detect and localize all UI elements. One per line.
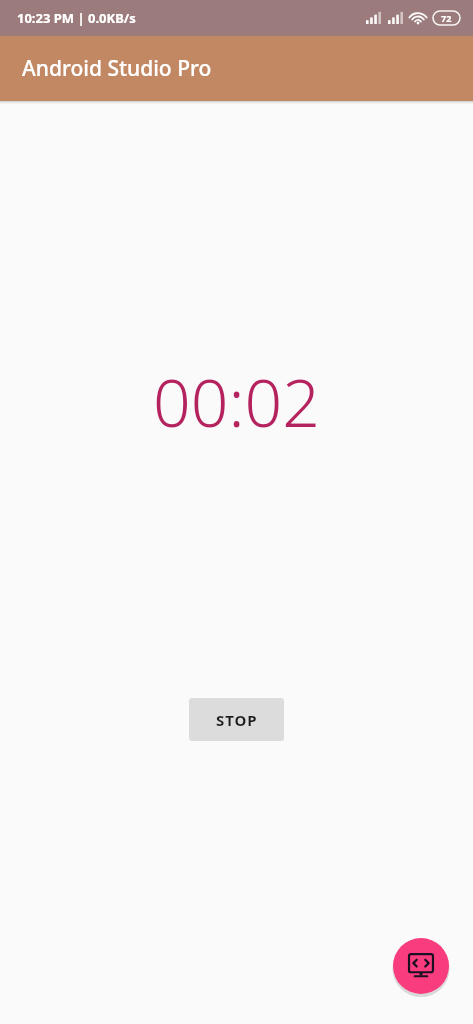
staticText: 72 <box>441 12 452 24</box>
staticText: Android Studio Pro <box>22 54 212 83</box>
staticText: 10:23 PM | 0.0KB/s <box>17 9 136 27</box>
staticText: STOP <box>216 710 258 730</box>
button[interactable]: Open code editor <box>393 938 449 994</box>
button[interactable]: STOP <box>189 698 284 741</box>
staticText: 00:02 <box>153 356 320 446</box>
